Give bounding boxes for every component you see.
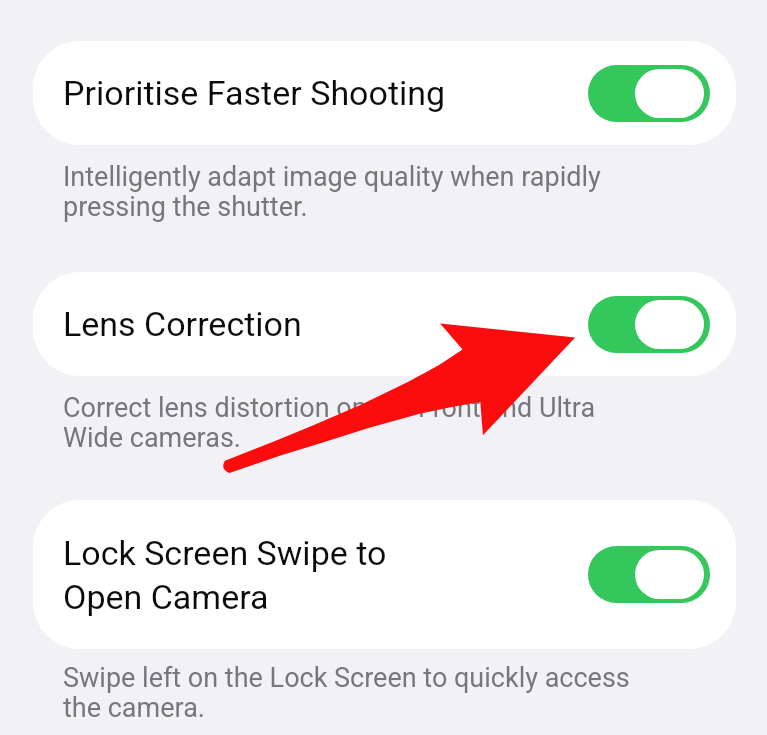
staticText: Correct lens distortion on the Front and… <box>63 392 643 453</box>
staticText: Lens Correction <box>63 304 448 344</box>
staticText: Lock Screen Swipe to Open Camera <box>63 533 448 617</box>
staticText: Swipe left on the Lock Screen to quickly… <box>63 662 643 723</box>
button[interactable]: Prioritise Faster Shooting <box>33 41 736 145</box>
button[interactable]: Lens Correction <box>33 272 736 376</box>
staticText: Intelligently adapt image quality when r… <box>63 161 643 222</box>
button[interactable]: Toggle setting on <box>588 546 710 603</box>
staticText: Prioritise Faster Shooting <box>63 73 448 113</box>
button[interactable]: Toggle setting on <box>588 296 710 353</box>
button[interactable]: Toggle setting on <box>588 65 710 122</box>
button[interactable]: Lock Screen Swipe to Open Camera <box>33 500 736 649</box>
